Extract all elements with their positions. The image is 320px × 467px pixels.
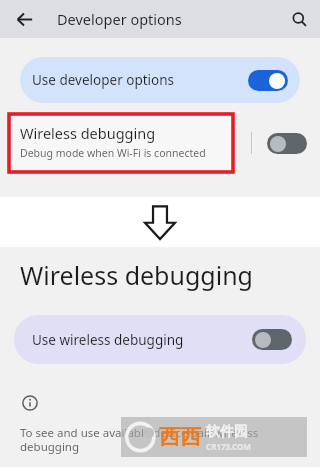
button[interactable]: Wireless debugging	[10, 111, 233, 172]
button[interactable]: Use developer options, on	[248, 70, 288, 91]
staticText: To see and use available device pair wir…	[20, 425, 259, 454]
staticText: Debug mode when Wi-Fi is connected	[20, 146, 206, 160]
staticText: Developer options	[57, 9, 182, 29]
staticText: Use developer options	[32, 71, 175, 89]
staticText: Use wireless debugging	[32, 331, 184, 349]
staticText: CR173.COM	[206, 441, 251, 452]
button[interactable]: Use developer options	[20, 57, 300, 103]
button[interactable]: Use wireless debugging	[14, 315, 306, 364]
button[interactable]: Wireless debugging, off	[267, 133, 307, 154]
button[interactable]: Use wireless debugging, off	[252, 329, 292, 350]
staticText: 西西	[159, 424, 201, 450]
staticText: Wireless debugging	[20, 123, 156, 143]
button[interactable]: Search	[284, 4, 314, 34]
button[interactable]: Back	[8, 3, 40, 35]
staticText: 软件园	[206, 423, 248, 441]
staticText: Wireless debugging	[20, 258, 253, 292]
